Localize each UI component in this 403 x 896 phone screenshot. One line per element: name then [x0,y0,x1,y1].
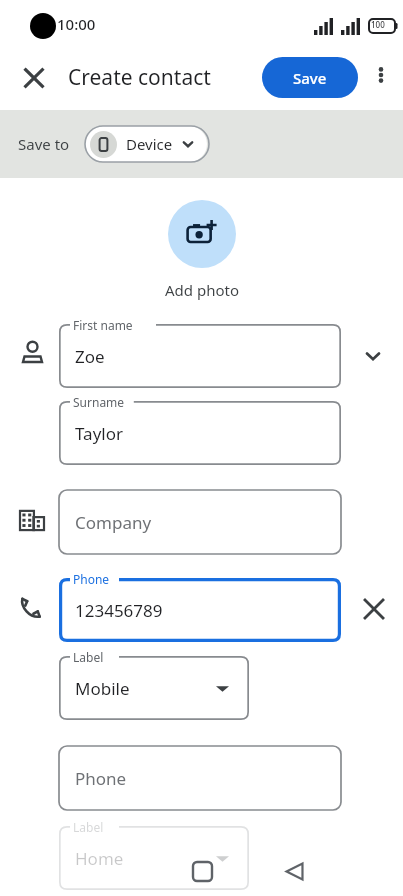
button[interactable]: Back [264,846,324,896]
staticText: Mobile [75,677,130,700]
button[interactable]: Surname [59,401,341,465]
staticText: Surname [73,394,125,410]
button[interactable]: Add photo [168,200,236,268]
staticText: Save to [18,134,70,154]
button[interactable]: Clear phone [355,590,393,628]
button[interactable]: Label [59,826,249,890]
staticText: Phone [73,571,110,587]
button[interactable]: More options [360,54,402,96]
button[interactable]: Device [85,126,207,162]
button[interactable]: Phone [59,578,341,642]
staticText: Home [75,847,124,870]
staticText: Phone [75,767,127,790]
staticText: Device [126,134,173,154]
button[interactable]: Phone [59,746,341,810]
staticText: 100 [371,19,385,30]
button[interactable]: Label [59,656,249,720]
staticText: Create contact [68,63,211,92]
staticText: Taylor [75,422,123,445]
staticText: Company [75,511,152,534]
button[interactable]: First name [59,324,341,388]
staticText: First name [73,317,133,333]
staticText: Add photo [165,280,239,300]
button[interactable]: Close [10,54,58,102]
button[interactable]: Home [172,846,232,896]
staticText: 10:00 [57,14,96,34]
button[interactable]: Save [262,57,358,98]
staticText: 123456789 [75,599,163,622]
staticText: Label [73,819,104,835]
button[interactable]: Company [59,490,341,554]
staticText: Save [293,68,327,88]
staticText: Label [73,649,104,665]
button[interactable]: Expand name fields [355,338,391,374]
staticText: Zoe [75,345,105,368]
